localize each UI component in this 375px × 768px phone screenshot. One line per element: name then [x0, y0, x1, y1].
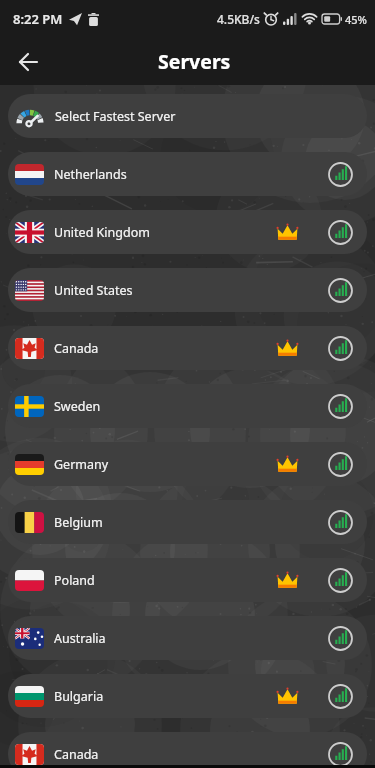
staticText: 8:22 PM	[13, 10, 63, 28]
button[interactable]: Canada	[8, 326, 367, 370]
staticText: Select Fastest Server	[55, 108, 176, 125]
staticText: Poland	[54, 572, 95, 589]
staticText: 45%	[345, 12, 367, 27]
button[interactable]: Belgium	[8, 500, 367, 544]
button[interactable]: Poland	[8, 558, 367, 602]
staticText: Canada	[54, 340, 99, 357]
staticText: 4.5KB/s	[217, 11, 260, 27]
button[interactable]: Germany	[8, 442, 367, 486]
staticText: Sweden	[54, 398, 101, 415]
staticText: Servers	[158, 48, 231, 75]
staticText: Australia	[54, 630, 106, 647]
staticText: Bulgaria	[54, 688, 104, 705]
staticText: Canada	[54, 746, 99, 763]
button[interactable]: Australia	[8, 616, 367, 660]
button[interactable]: Canada	[8, 732, 367, 768]
staticText: United States	[54, 282, 133, 299]
button[interactable]: Netherlands	[8, 152, 367, 196]
button[interactable]: Select Fastest Server	[8, 94, 367, 138]
staticText: United Kingdom	[54, 224, 150, 241]
staticText: Netherlands	[54, 166, 127, 183]
staticText: Belgium	[54, 514, 103, 531]
button[interactable]: United Kingdom	[8, 210, 367, 254]
staticText: Germany	[54, 456, 109, 473]
button[interactable]: Sweden	[8, 384, 367, 428]
button[interactable]: United States	[8, 268, 367, 312]
button[interactable]	[12, 46, 44, 78]
button[interactable]: Bulgaria	[8, 674, 367, 718]
